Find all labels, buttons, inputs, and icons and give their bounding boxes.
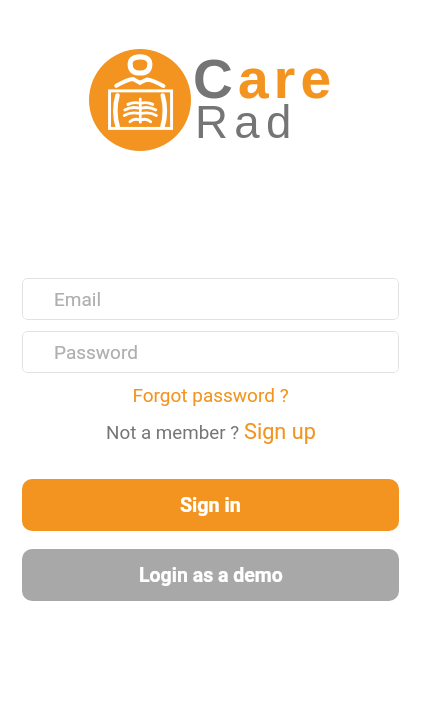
staticText: Password (54, 341, 138, 363)
button[interactable]: Password (22, 331, 399, 373)
staticText: Login as a demo (139, 564, 283, 587)
button[interactable]: Sign in (22, 479, 399, 531)
button[interactable]: Login as a demo (22, 549, 399, 601)
staticText: Care (193, 48, 337, 110)
staticText: Not a member ? (106, 422, 244, 444)
staticText: Email (54, 288, 102, 310)
staticText: Sign in (180, 494, 241, 517)
staticText: Rad (195, 97, 298, 148)
button[interactable]: Email (22, 278, 399, 320)
button[interactable]: Sign up (244, 419, 316, 444)
button[interactable]: Forgot password ? (22, 384, 399, 406)
